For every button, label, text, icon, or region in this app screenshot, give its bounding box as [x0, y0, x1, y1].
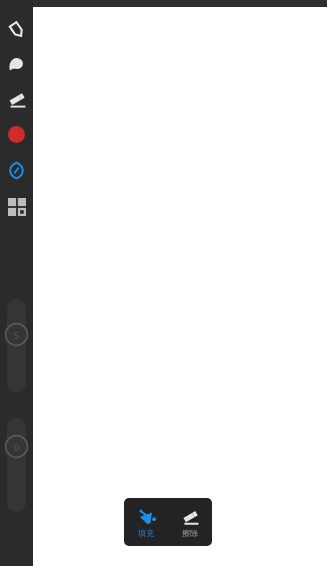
button[interactable]: Pen: [0, 16, 33, 44]
staticText: S: [14, 329, 19, 341]
button[interactable]: Opacity slider: [7, 418, 26, 512]
staticText: 擦除: [182, 528, 198, 538]
button[interactable]: Shape: [0, 156, 33, 184]
staticText: 0: [14, 441, 20, 453]
staticText: 填充: [138, 528, 154, 538]
button[interactable]: 填充: [124, 498, 168, 546]
button[interactable]: Smudge: [0, 50, 33, 78]
button[interactable]: Layers: [0, 193, 33, 221]
button[interactable]: 擦除: [168, 498, 212, 546]
button[interactable]: Color: [0, 120, 33, 148]
button[interactable]: Eraser: [0, 85, 33, 113]
button[interactable]: Brush size slider: [7, 299, 26, 393]
